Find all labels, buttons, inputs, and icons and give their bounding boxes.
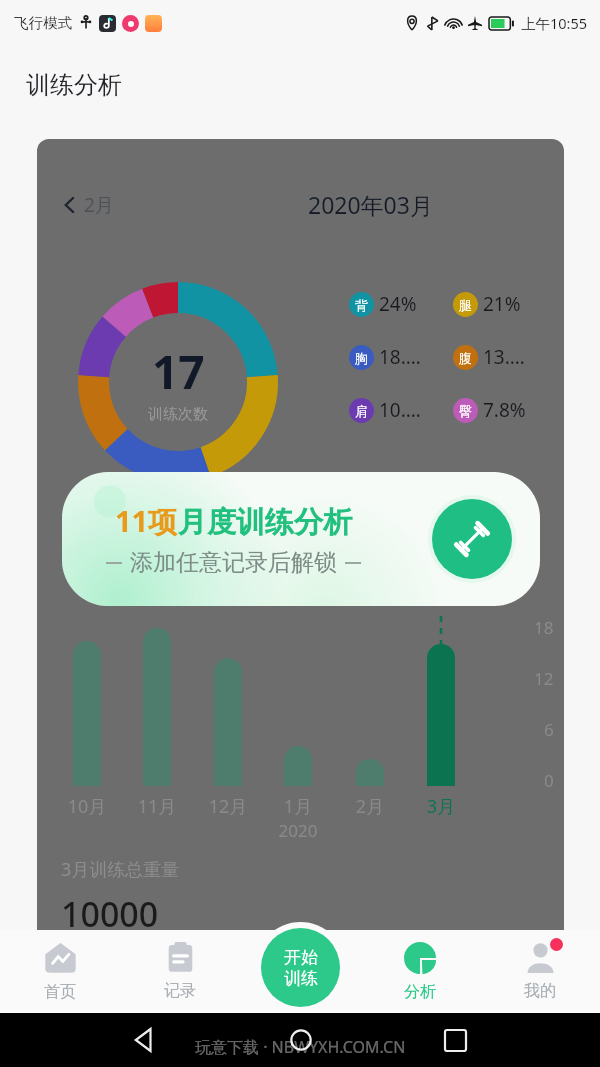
other: Unlock training analysis [432,499,512,579]
staticText: 训练 [284,968,318,989]
staticText: 上午10:55 [521,13,588,33]
staticText: 开始 [284,947,318,968]
staticText: 训练次数 [148,405,208,424]
staticText: 飞行模式 [14,14,72,32]
button[interactable]: 11项 [62,472,540,606]
staticText: 首页 [44,982,76,1002]
staticText: 11项 [115,501,178,541]
staticText: 记录 [164,981,196,1001]
staticText: 12 [534,667,554,690]
button[interactable]: Previous month [63,192,114,218]
staticText: 添加任意记录后解锁 [130,548,337,577]
staticText: 2020 [272,819,324,842]
other: Back [134,1029,156,1051]
staticText: 3月 [420,794,462,819]
staticText: 10000 [61,891,159,937]
staticText: 13.… [483,344,525,370]
staticText: 臀 [459,403,472,419]
staticText: 18.… [379,344,421,370]
button[interactable]: 记录 [120,930,240,1013]
staticText: 分析 [404,982,436,1002]
staticText: 11月 [136,794,178,819]
staticText: 7.8% [483,397,526,423]
other: Recents [445,1030,466,1051]
staticText: 肩 [355,403,368,419]
staticText: 训练分析 [26,70,122,100]
staticText: 12月 [207,794,249,819]
staticText: 3月训练总重量 [61,857,180,882]
staticText: 玩意下载 · NBWYXH.COM.CN [195,1036,406,1058]
button[interactable]: 我的 [480,930,600,1013]
other: Home [290,1029,312,1051]
staticText: 0 [544,769,554,792]
staticText: 17 [152,340,205,403]
staticText: 10.… [379,397,421,423]
staticText: 1月 [277,794,319,819]
other: Previous month [63,198,77,212]
button[interactable]: 首页 [0,930,120,1013]
staticText: 背 [355,297,368,313]
staticText: 月度训练分析 [178,504,352,541]
staticText: 2020年03月 [308,189,433,220]
staticText: 2月 [349,794,391,819]
staticText: 21% [483,291,521,317]
staticText: 胸 [355,350,368,366]
staticText: 18 [534,616,554,639]
staticText: 6 [544,718,554,741]
staticText: 我的 [524,981,556,1001]
staticText: 10月 [66,794,108,819]
staticText: 2月 [84,192,114,218]
button[interactable]: 开始 [261,928,340,1007]
staticText: 腿 [459,297,472,313]
staticText: 腹 [459,350,472,366]
button[interactable]: 分析 [360,930,480,1013]
staticText: 24% [379,291,417,317]
